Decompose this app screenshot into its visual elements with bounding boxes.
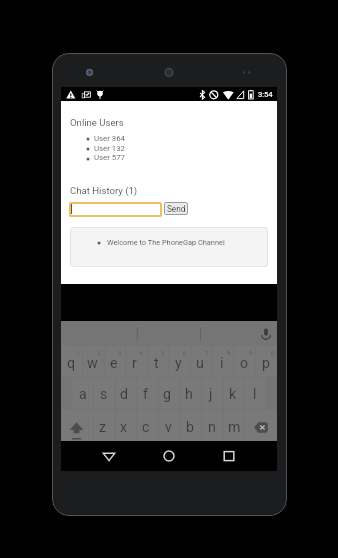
staticText: 4 [139,349,143,356]
button[interactable]: a [72,378,93,410]
staticText: x [120,419,128,436]
button[interactable]: Backspace [245,410,277,441]
staticText: 8 [227,349,231,356]
button[interactable]: l [244,378,266,410]
staticText: a [79,386,87,403]
staticText: User 132 [94,144,125,153]
button[interactable]: Send [164,202,188,215]
staticText: Send [167,204,186,214]
button[interactable]: 2 [82,346,103,378]
staticText: f [143,386,148,403]
button[interactable]: d [114,378,135,410]
button[interactable]: m [223,410,245,441]
staticText: g [163,386,171,403]
button[interactable]: 4 [124,346,145,378]
staticText: Chat History (1) [70,185,138,196]
staticText: w [87,355,98,372]
button[interactable]: j [200,378,222,410]
staticText: 5 [161,349,165,356]
button[interactable]: z [92,410,113,441]
button[interactable]: 3 [103,346,124,378]
staticText: v [165,419,172,436]
staticText: t [154,355,159,372]
staticText: h [185,386,193,403]
staticText: k [229,386,237,403]
staticText: r [132,355,137,372]
button[interactable] [69,202,162,217]
staticText: m [228,419,241,436]
staticText: n [208,419,216,436]
button[interactable]: g [156,378,178,410]
button[interactable]: Recents [218,445,240,467]
staticText: p [262,355,270,372]
button[interactable]: c [135,410,157,441]
button[interactable]: n [201,410,223,441]
button[interactable]: v [157,410,179,441]
staticText: e [110,355,118,372]
button[interactable]: 0 [255,346,277,378]
button[interactable]: s [93,378,114,410]
button[interactable]: 6 [167,346,189,378]
button[interactable] [61,321,277,346]
staticText: 2 [97,349,101,356]
button[interactable]: 8 [211,346,233,378]
staticText: 0 [271,349,275,356]
staticText: 3:54 [258,90,273,99]
button[interactable]: f [135,378,156,410]
staticText: User 577 [94,153,125,162]
staticText: o [240,355,249,372]
staticText: 1 [76,349,80,356]
button[interactable]: Voice input [256,321,276,346]
button[interactable]: 1 [61,346,82,378]
button[interactable]: x [113,410,135,441]
staticText: 6 [183,349,187,356]
staticText: i [220,355,224,372]
staticText: 9 [249,349,253,356]
staticText: q [67,355,76,372]
staticText: u [196,355,204,372]
staticText: l [253,386,257,403]
staticText: d [120,386,129,403]
button[interactable]: Back [98,445,120,467]
staticText: s [100,386,108,403]
staticText: 3 [118,349,122,356]
button[interactable]: b [179,410,201,441]
staticText: Online Users [70,117,124,128]
staticText: j [209,386,213,403]
staticText: 7 [205,349,209,356]
button[interactable]: h [178,378,200,410]
button[interactable]: k [222,378,244,410]
staticText: Welcome to The PhoneGap Channel [107,238,225,247]
button[interactable]: 5 [145,346,167,378]
staticText: b [186,419,194,436]
staticText: y [175,355,182,372]
staticText: z [99,419,107,436]
staticText: c [142,419,150,436]
button[interactable]: Home [158,445,180,467]
staticText: User 364 [94,134,125,143]
button[interactable]: 9 [233,346,255,378]
button[interactable]: 7 [189,346,211,378]
button[interactable]: Shift [61,410,92,441]
